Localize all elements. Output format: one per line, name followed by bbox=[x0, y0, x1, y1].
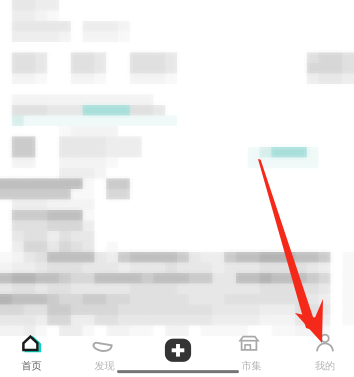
staticText: 首页 bbox=[22, 359, 42, 372]
button[interactable]: 发现 bbox=[73, 334, 135, 377]
staticText: 市集 bbox=[241, 359, 261, 372]
staticText: 我的 bbox=[315, 359, 335, 372]
button[interactable]: 我的 bbox=[294, 334, 354, 377]
button[interactable]: 市集 bbox=[220, 334, 282, 377]
button[interactable]: 首页 bbox=[1, 334, 63, 377]
button[interactable]: 发布 bbox=[152, 329, 204, 371]
staticText: 发现 bbox=[94, 359, 114, 372]
